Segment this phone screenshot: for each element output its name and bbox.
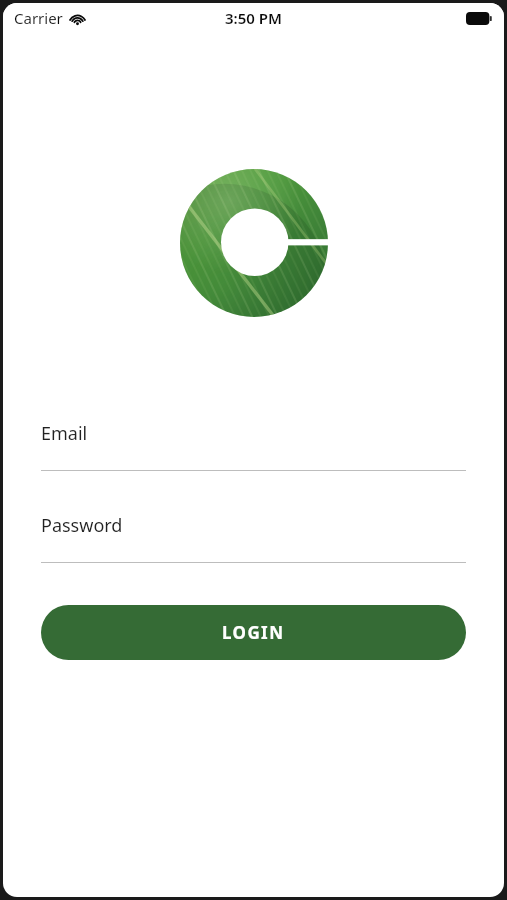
- staticText: LOGIN: [222, 621, 285, 644]
- staticText: Carrier: [14, 8, 63, 28]
- staticText: 3:50 PM: [225, 8, 282, 28]
- staticText: Email: [41, 421, 88, 446]
- button[interactable]: LOGIN: [41, 605, 466, 660]
- staticText: Password: [41, 513, 123, 538]
- button[interactable]: Password: [41, 513, 466, 563]
- button[interactable]: Email: [41, 421, 466, 471]
